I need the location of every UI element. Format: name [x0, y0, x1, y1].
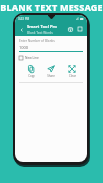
button[interactable]: Copy [22, 64, 40, 79]
button[interactable]: More options [76, 25, 84, 33]
button[interactable]: New Line [19, 56, 39, 60]
button[interactable]: Back [18, 26, 25, 33]
button[interactable]: Apps [66, 25, 74, 33]
button[interactable]: 1000 [19, 45, 83, 52]
staticText: 3:23 PM [18, 17, 30, 21]
staticText: Enter Number of Blanks [19, 39, 55, 43]
button[interactable]: Clear [63, 64, 81, 79]
staticText: BLANK TEXT MESSAGE [0, 1, 103, 13]
staticText: Clear [69, 74, 76, 78]
staticText: Share [47, 74, 55, 78]
staticText: 1000 [19, 45, 29, 50]
staticText: Smart Tool Pro [27, 24, 57, 30]
button[interactable]: Share [42, 64, 60, 79]
staticText: New Line [25, 56, 39, 60]
staticText: Blank Text Words [27, 31, 53, 35]
staticText: Copy [28, 74, 35, 78]
